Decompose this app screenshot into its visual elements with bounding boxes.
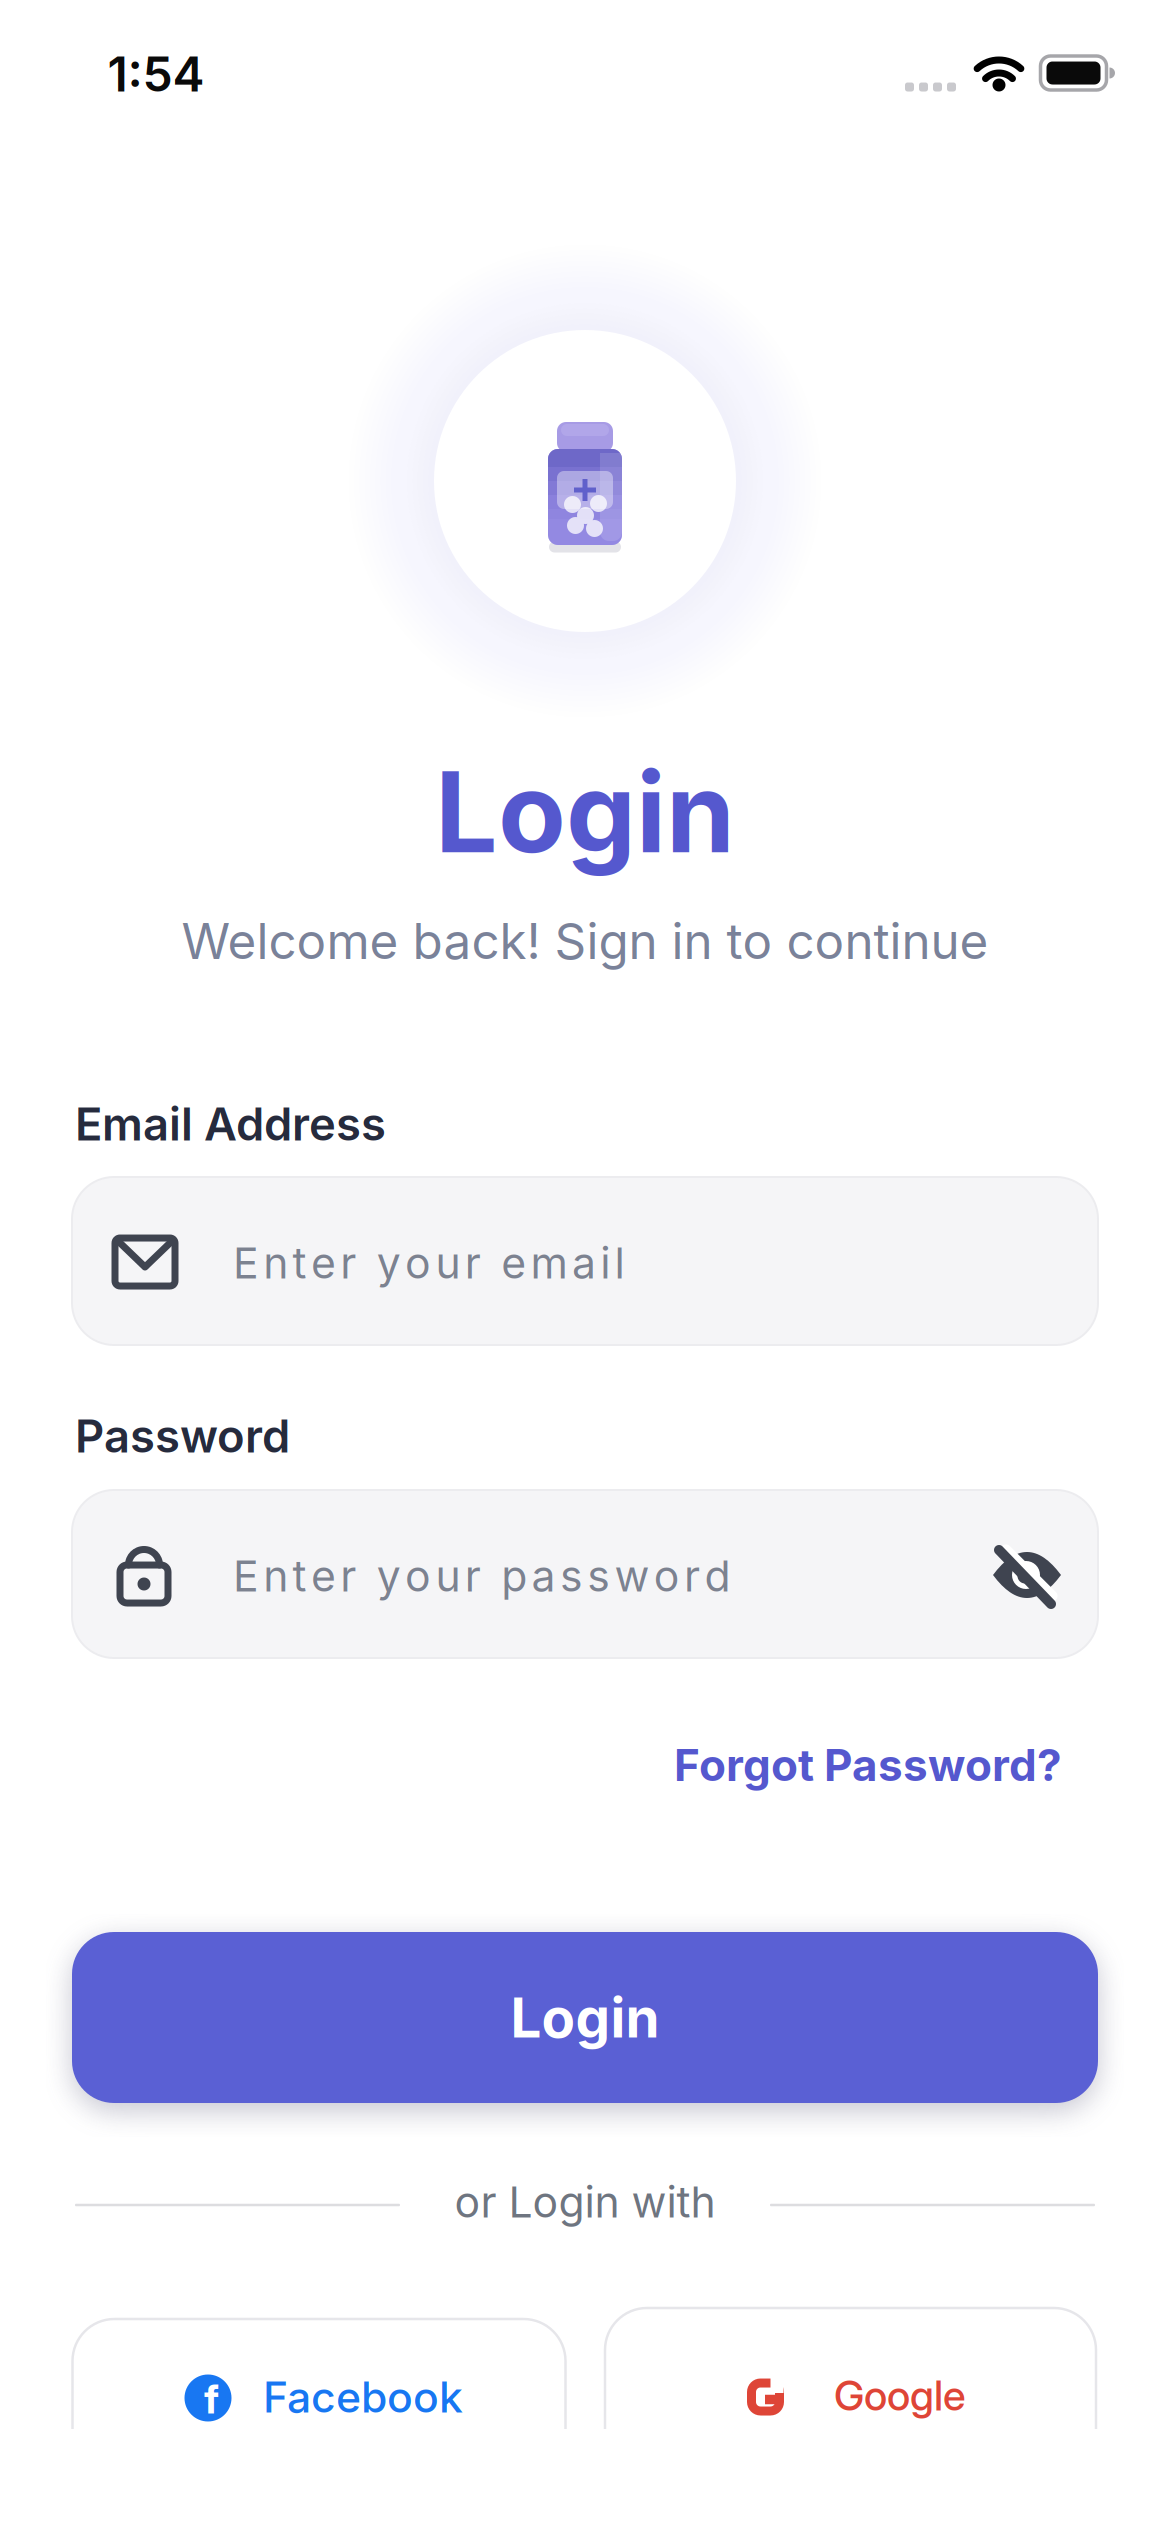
staticText: Email Address — [75, 1097, 386, 1151]
staticText: Login — [435, 747, 735, 877]
staticText: a — [572, 1238, 596, 1288]
staticText: s — [587, 1551, 610, 1601]
staticText: Welcome back! Sign in to continue — [181, 912, 988, 970]
staticText: r — [340, 1551, 356, 1601]
staticText: u — [435, 1238, 460, 1288]
button[interactable]: Google — [605, 2308, 1096, 2476]
staticText: or Login with — [454, 2177, 715, 2227]
staticText: u — [435, 1551, 460, 1601]
staticText: r — [340, 1238, 356, 1288]
staticText: t — [293, 1551, 307, 1601]
staticText: n — [263, 1551, 288, 1601]
staticText: s — [560, 1551, 583, 1601]
staticText: Login — [510, 1985, 659, 2050]
staticText: r — [465, 1551, 481, 1601]
staticText: 1:54 — [107, 46, 204, 102]
button[interactable]: Forgot Password? — [462, 1715, 1062, 1815]
staticText: r — [465, 1238, 481, 1288]
button[interactable]: Show password — [971, 1520, 1081, 1630]
staticText: Password — [75, 1409, 290, 1463]
staticText: r — [684, 1551, 700, 1601]
staticText: a — [532, 1551, 556, 1601]
staticText: o — [405, 1238, 431, 1288]
staticText: f — [204, 2375, 219, 2423]
staticText: o — [654, 1551, 680, 1601]
staticText: o — [405, 1551, 431, 1601]
staticText: e — [501, 1238, 526, 1288]
staticText: t — [293, 1238, 307, 1288]
staticText: Google — [834, 2371, 966, 2420]
staticText: p — [501, 1551, 527, 1601]
button[interactable]: Login — [72, 1932, 1098, 2103]
staticText: E — [233, 1551, 259, 1601]
button[interactable]: f — [72, 2319, 565, 2487]
staticText: y — [377, 1551, 401, 1601]
staticText: l — [614, 1238, 624, 1288]
staticText: m — [531, 1238, 568, 1288]
staticText: e — [311, 1238, 336, 1288]
staticText: i — [600, 1238, 610, 1288]
staticText: E — [233, 1238, 259, 1288]
staticText: Facebook — [263, 2372, 463, 2422]
staticText: n — [263, 1238, 288, 1288]
staticText: w — [614, 1551, 649, 1601]
staticText: e — [311, 1551, 336, 1601]
staticText: y — [377, 1238, 401, 1288]
staticText: d — [704, 1551, 730, 1601]
staticText: Forgot Password? — [674, 1739, 1062, 1791]
